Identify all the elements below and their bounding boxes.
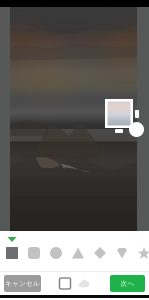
button[interactable]: キャンセル bbox=[4, 275, 41, 292]
button[interactable]: 次へ bbox=[110, 275, 145, 292]
staticText: キャンセル bbox=[5, 279, 40, 288]
button[interactable] bbox=[28, 247, 40, 259]
button[interactable] bbox=[50, 247, 62, 259]
button[interactable] bbox=[94, 247, 106, 259]
button[interactable] bbox=[138, 247, 149, 259]
button[interactable]: Crop frame bbox=[57, 275, 73, 291]
button[interactable]: Effects bbox=[76, 275, 92, 291]
button[interactable] bbox=[72, 247, 84, 259]
button[interactable] bbox=[116, 247, 128, 259]
staticText: 次へ bbox=[120, 279, 134, 288]
